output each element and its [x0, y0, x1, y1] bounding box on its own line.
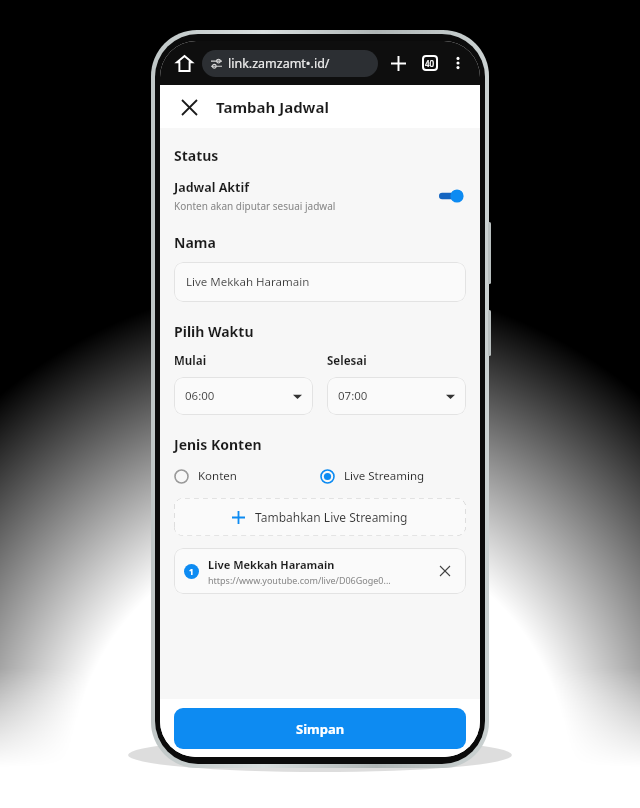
button[interactable]: Konten — [174, 468, 320, 484]
staticText: 07:00 — [338, 388, 368, 404]
staticText: https://www.youtube.com/live/D06Goge0... — [208, 574, 391, 586]
staticText: Konten — [198, 468, 237, 484]
button[interactable]: New tab — [384, 49, 412, 77]
button[interactable]: Live Mekkah Haramain — [174, 262, 466, 302]
button[interactable]: More options — [446, 51, 470, 75]
staticText: link.zamzamt•.id/ — [228, 55, 330, 72]
staticText: Mulai — [174, 353, 207, 369]
staticText: Live Streaming — [344, 468, 425, 484]
staticText: Live Mekkah Haramain — [186, 274, 310, 290]
staticText: 06:00 — [185, 388, 215, 404]
staticText: Nama — [174, 233, 216, 252]
button[interactable]: Simpan — [174, 708, 466, 749]
button[interactable]: Tambahkan Live Streaming — [174, 498, 466, 536]
staticText: Selesai — [327, 353, 367, 369]
staticText: Status — [174, 146, 219, 165]
button[interactable]: 07:00 — [327, 377, 466, 415]
staticText: Tambah Jadwal — [216, 97, 329, 117]
button[interactable]: Jadwal Aktif — [160, 165, 480, 219]
staticText: Live Mekkah Haramain — [208, 557, 335, 572]
button[interactable]: Close — [174, 92, 204, 122]
button[interactable]: link.zamzamt•.id/ — [202, 50, 378, 77]
button[interactable]: 1 — [174, 548, 466, 594]
staticText: 1 — [189, 566, 194, 577]
button[interactable]: Home — [170, 49, 198, 77]
staticText: 40 — [425, 58, 435, 69]
button[interactable]: Remove — [434, 560, 456, 582]
staticText: Simpan — [296, 720, 345, 738]
staticText: Tambahkan Live Streaming — [255, 509, 408, 525]
button[interactable]: Live Streaming — [320, 468, 466, 484]
button[interactable]: Tabs — [416, 49, 444, 77]
staticText: Jenis Konten — [174, 435, 262, 454]
button[interactable]: 06:00 — [174, 377, 313, 415]
staticText: Jadwal Aktif — [174, 179, 250, 196]
staticText: Konten akan diputar sesuai jadwal — [174, 199, 336, 213]
staticText: Pilih Waktu — [174, 322, 254, 341]
